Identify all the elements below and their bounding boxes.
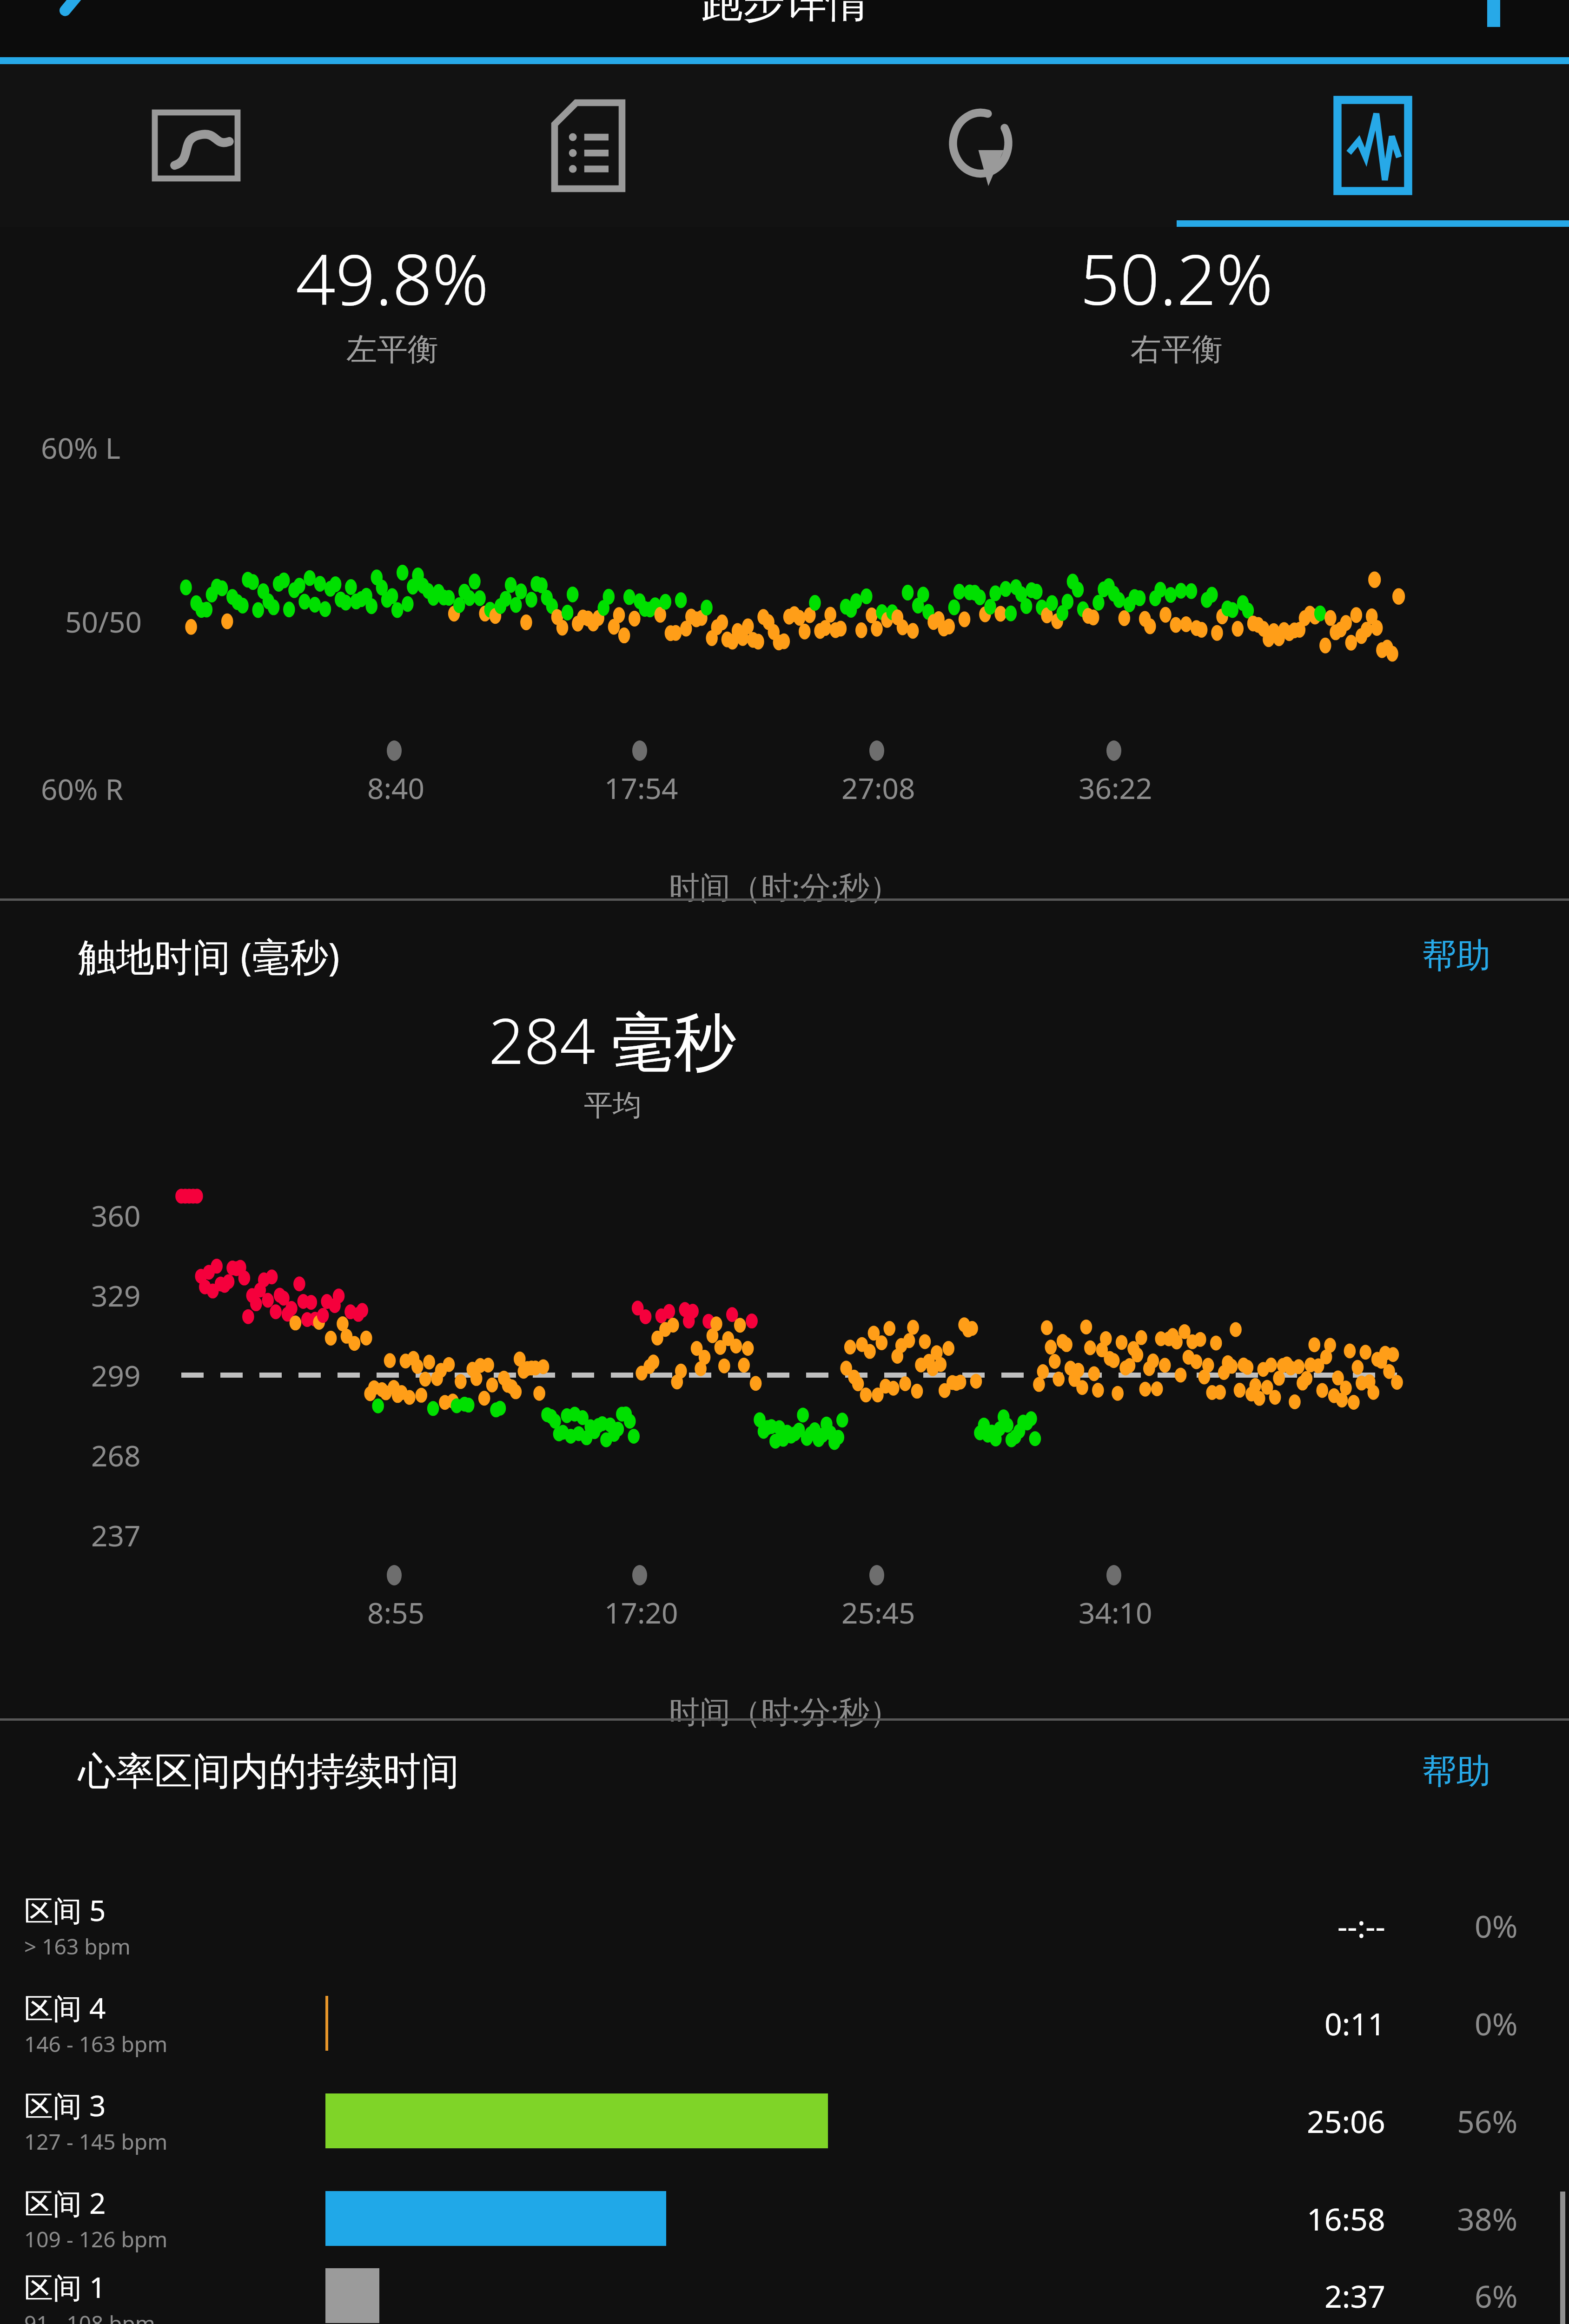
button[interactable]: 区间 1 [0,2267,1569,2324]
button[interactable]: 帮助 [1422,934,1491,977]
staticText: 34:10 [1079,1593,1152,1632]
button[interactable]: Laps [784,64,1177,227]
staticText: 109 - 126 bpm [24,2225,168,2254]
staticText: 329 [91,1276,141,1315]
staticText: 91 - 108 bpm [24,2309,155,2324]
staticText: 25:06 [1307,2100,1385,2142]
staticText: 56% [1457,2100,1518,2142]
staticText: 区间 3 [24,2086,106,2125]
staticText: 左平衡 [346,330,438,369]
staticText: 36:22 [1079,768,1152,807]
staticText: --:-- [1337,1905,1385,1947]
staticText: 平均 [584,1087,642,1123]
staticText: 0% [1475,1905,1518,1947]
staticText: 50/50 [65,602,142,641]
staticText: 284 毫秒 [489,997,736,1083]
staticText: 17:54 [604,768,678,807]
staticText: 27:08 [841,768,915,807]
button[interactable]: Charts [1177,64,1569,227]
staticText: 区间 4 [24,1988,106,2027]
staticText: 146 - 163 bpm [24,2029,168,2059]
staticText: 右平衡 [1131,330,1223,369]
staticText: 触地时间 (毫秒) [78,930,340,982]
staticText: 127 - 145 bpm [24,2127,168,2156]
staticText: 8:40 [367,768,425,807]
button[interactable]: 帮助 [1422,1750,1491,1793]
staticText: 38% [1457,2198,1518,2239]
staticText: 区间 5 [24,1890,106,1930]
button[interactable]: 区间 4 [0,1974,1569,2072]
staticText: 0:11 [1324,2002,1385,2044]
staticText: 帮助 [1422,934,1491,977]
staticText: 心率区间内的持续时间 [78,1748,459,1796]
staticText: 60% R [41,769,124,808]
button[interactable]: Map [0,64,392,227]
button[interactable]: 区间 3 [0,2072,1569,2170]
staticText: 8:55 [367,1593,425,1632]
staticText: 17:20 [604,1593,678,1632]
staticText: 49.8% [296,231,489,325]
staticText: 268 [91,1436,141,1475]
staticText: 时间（时:分:秒） [669,865,900,907]
staticText: > 163 bpm [24,1932,131,1961]
staticText: 237 [91,1516,141,1555]
staticText: 16:58 [1307,2198,1385,2239]
staticText: 区间 1 [24,2267,106,2307]
button[interactable]: 区间 2 [0,2170,1569,2267]
staticText: 50.2% [1080,231,1273,325]
staticText: 0% [1475,2002,1518,2044]
staticText: 25:45 [841,1593,915,1632]
staticText: 299 [91,1356,141,1395]
staticText: 区间 2 [24,2183,106,2223]
button[interactable]: More options [1487,0,1500,27]
staticText: 2:37 [1324,2275,1385,2317]
button[interactable]: Splits [392,64,784,227]
staticText: 时间（时:分:秒） [669,1690,900,1731]
staticText: 6% [1475,2275,1518,2317]
staticText: 跑步详情 [701,0,868,28]
button[interactable]: Back [51,0,121,25]
button[interactable]: 区间 5 [0,1877,1569,1974]
staticText: 360 [91,1196,141,1235]
staticText: 帮助 [1422,1750,1491,1793]
staticText: 60% L [41,428,121,467]
